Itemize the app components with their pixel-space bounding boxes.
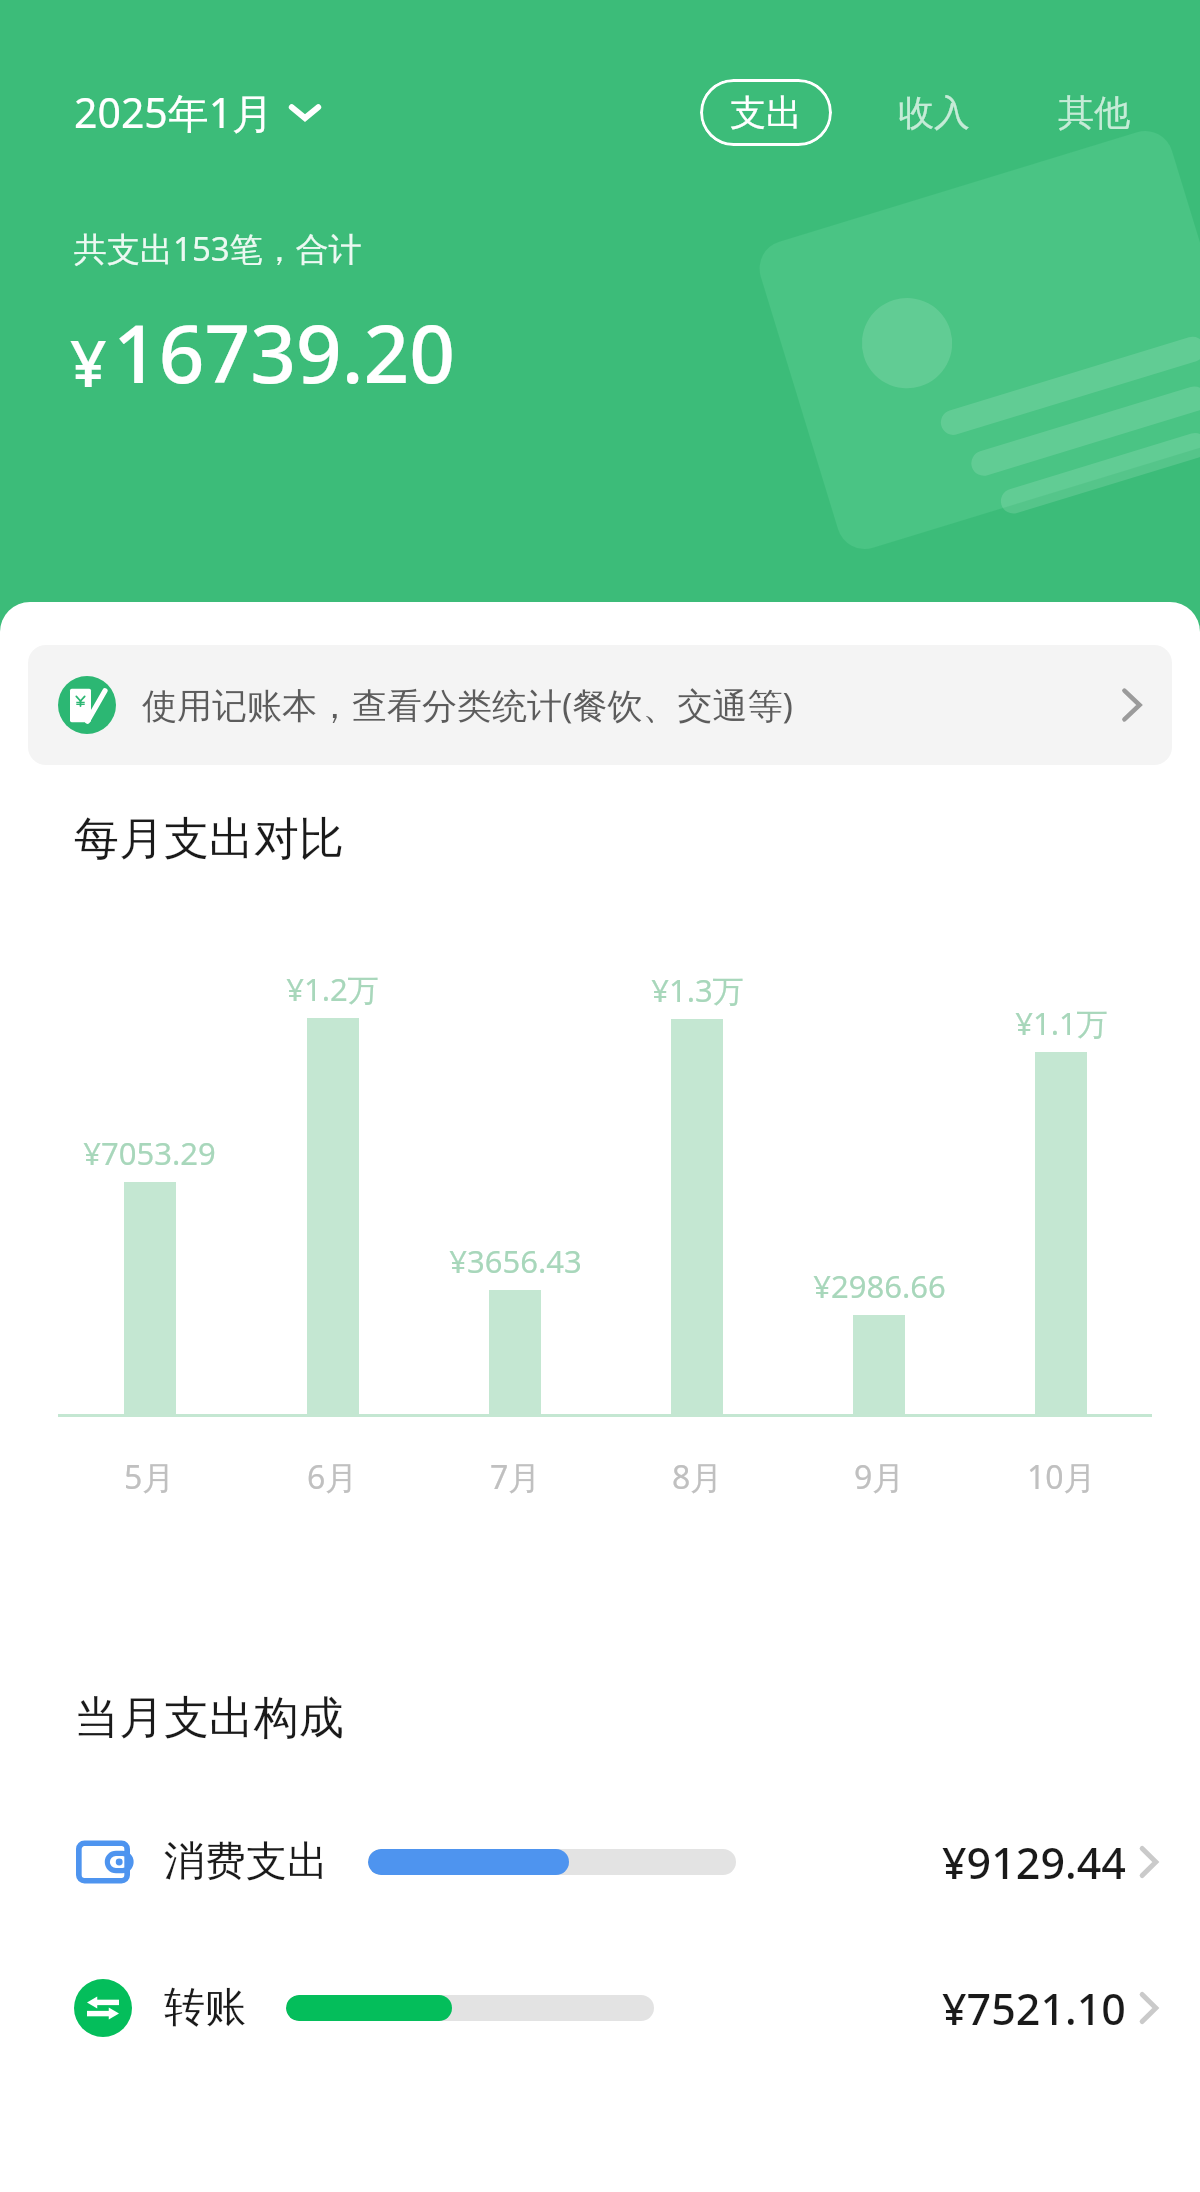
staticText: 10月	[1027, 1455, 1096, 1499]
button[interactable]: 2025年1月	[66, 76, 328, 148]
staticText: ¥3656.43	[449, 1240, 582, 1282]
staticText: 其他	[1058, 90, 1130, 135]
staticText: 6月	[307, 1455, 358, 1499]
staticText: ¥7053.29	[83, 1132, 216, 1174]
staticText: 收入	[898, 90, 970, 135]
staticText: 5月	[124, 1455, 175, 1499]
staticText: 当月支出构成	[74, 1690, 344, 1747]
button[interactable]: 收入	[890, 79, 978, 146]
button[interactable]: 支出	[700, 79, 832, 146]
button[interactable]: 转账	[0, 1953, 1200, 2063]
staticText: 使用记账本，查看分类统计(餐饮、交通等)	[142, 681, 793, 729]
other: 消费支出	[76, 1835, 130, 1889]
staticText: 共支出153笔，合计	[74, 226, 362, 271]
staticText: ¥1.2万	[286, 968, 379, 1010]
staticText: 8月	[672, 1455, 723, 1499]
other: 使用记账本	[58, 676, 116, 734]
staticText: ¥7521.10	[942, 1979, 1126, 2038]
staticText: 16739.20	[113, 297, 456, 406]
staticText: ¥	[70, 319, 107, 406]
button[interactable]: 消费支出	[0, 1807, 1200, 1917]
staticText: 7月	[490, 1455, 541, 1499]
staticText: 每月支出对比	[74, 811, 344, 868]
button[interactable]: 其他	[1050, 79, 1138, 146]
staticText: 消费支出	[164, 1836, 328, 1888]
staticText: 转账	[164, 1982, 246, 2034]
staticText: ¥9129.44	[942, 1833, 1126, 1892]
staticText: 2025年1月	[74, 84, 274, 140]
staticText: 9月	[854, 1455, 905, 1499]
staticText: ¥1.3万	[651, 969, 744, 1011]
staticText: 支出	[730, 90, 802, 135]
button[interactable]: 使用记账本	[28, 645, 1172, 765]
staticText: ¥1.1万	[1015, 1002, 1108, 1044]
staticText: ¥2986.66	[813, 1265, 946, 1307]
other: 转账	[74, 1979, 132, 2037]
